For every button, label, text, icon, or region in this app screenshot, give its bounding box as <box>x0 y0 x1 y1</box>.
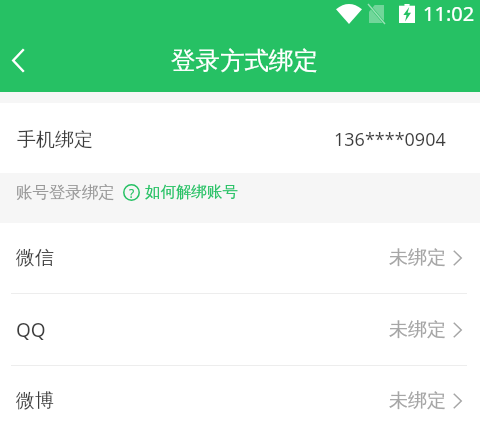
staticText: 手机绑定 <box>17 128 93 152</box>
staticText: 如何解绑账号 <box>145 182 238 202</box>
button[interactable]: QQ <box>0 294 480 365</box>
button[interactable]: 手机绑定 <box>0 103 480 173</box>
button[interactable]: 微信 <box>0 223 480 293</box>
staticText: 登录方式绑定 <box>171 45 318 76</box>
staticText: 11:02 <box>423 0 475 27</box>
staticText: 未绑定 <box>389 246 446 270</box>
button[interactable]: ? <box>123 182 238 202</box>
staticText: 未绑定 <box>389 318 446 342</box>
staticText: 136****0904 <box>334 127 446 152</box>
staticText: 微博 <box>16 389 54 413</box>
staticText: 微信 <box>16 246 54 270</box>
staticText: 未绑定 <box>389 389 446 413</box>
staticText: 账号登录绑定 <box>16 182 115 203</box>
button[interactable]: 微博 <box>0 363 480 431</box>
staticText: QQ <box>16 317 46 343</box>
button[interactable]: Back <box>0 42 36 78</box>
staticText: ? <box>129 185 135 201</box>
